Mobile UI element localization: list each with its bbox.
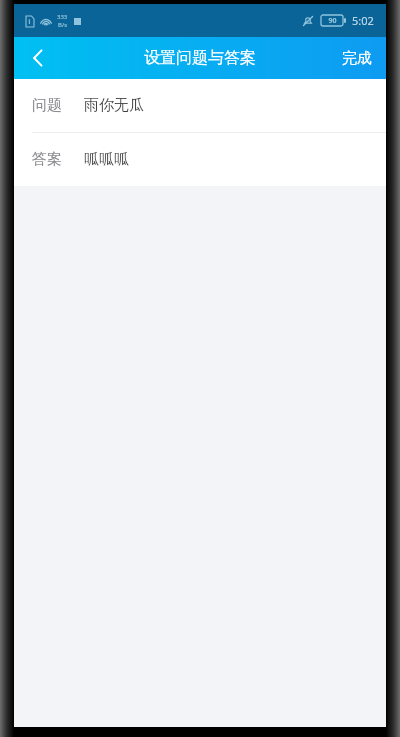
staticText: 完成 [342,49,372,68]
staticText: B/s [58,21,68,29]
staticText: 答案 [32,150,62,169]
staticText: 问题 [32,96,62,115]
staticText: 5:02 [352,13,374,28]
staticText: 90 [328,16,337,26]
button[interactable]: 答案 [14,133,386,186]
staticText: 333 [57,13,68,21]
button[interactable]: 完成 [328,37,386,79]
staticText: 雨你无瓜 [84,96,144,115]
button[interactable]: 返回 [14,37,62,79]
staticText: 呱呱呱 [84,150,129,169]
button[interactable]: 问题 [14,79,386,132]
staticText: 设置问题与答案 [144,48,256,68]
